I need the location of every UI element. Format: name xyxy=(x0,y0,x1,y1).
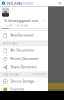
button[interactable]: My Documents xyxy=(0,46,48,55)
staticText: Device Storage xyxy=(10,80,34,83)
button[interactable]: Share Document xyxy=(0,63,48,71)
staticText: ? xyxy=(44,19,45,22)
staticText: New Document xyxy=(10,34,33,37)
staticText: 0.0 MB / 1.00 GB used xyxy=(4,24,27,27)
staticText: Unregistered xyxy=(32,73,45,76)
staticText: Other Storage xyxy=(2,73,19,76)
button[interactable]: Device Storage xyxy=(0,77,48,85)
staticText: Share Document xyxy=(10,65,36,69)
staticText: Office xyxy=(22,1,33,6)
staticText: Recent Document xyxy=(10,57,38,61)
staticText: Evernote xyxy=(10,88,24,91)
staticText: POLARIS xyxy=(7,1,22,6)
staticText: hi.kimbo@gmail.com xyxy=(4,19,38,23)
button[interactable]: New Document xyxy=(0,30,48,40)
button[interactable]: hi.kimbo@gmail.com xyxy=(0,6,48,30)
button[interactable]: Recent Document xyxy=(0,55,48,63)
staticText: My Storage xyxy=(2,42,16,45)
button[interactable]: Search xyxy=(56,0,64,6)
button[interactable]: Evernote xyxy=(0,85,48,93)
staticText: My Documents xyxy=(10,49,34,52)
button[interactable]: Menu xyxy=(0,0,7,6)
